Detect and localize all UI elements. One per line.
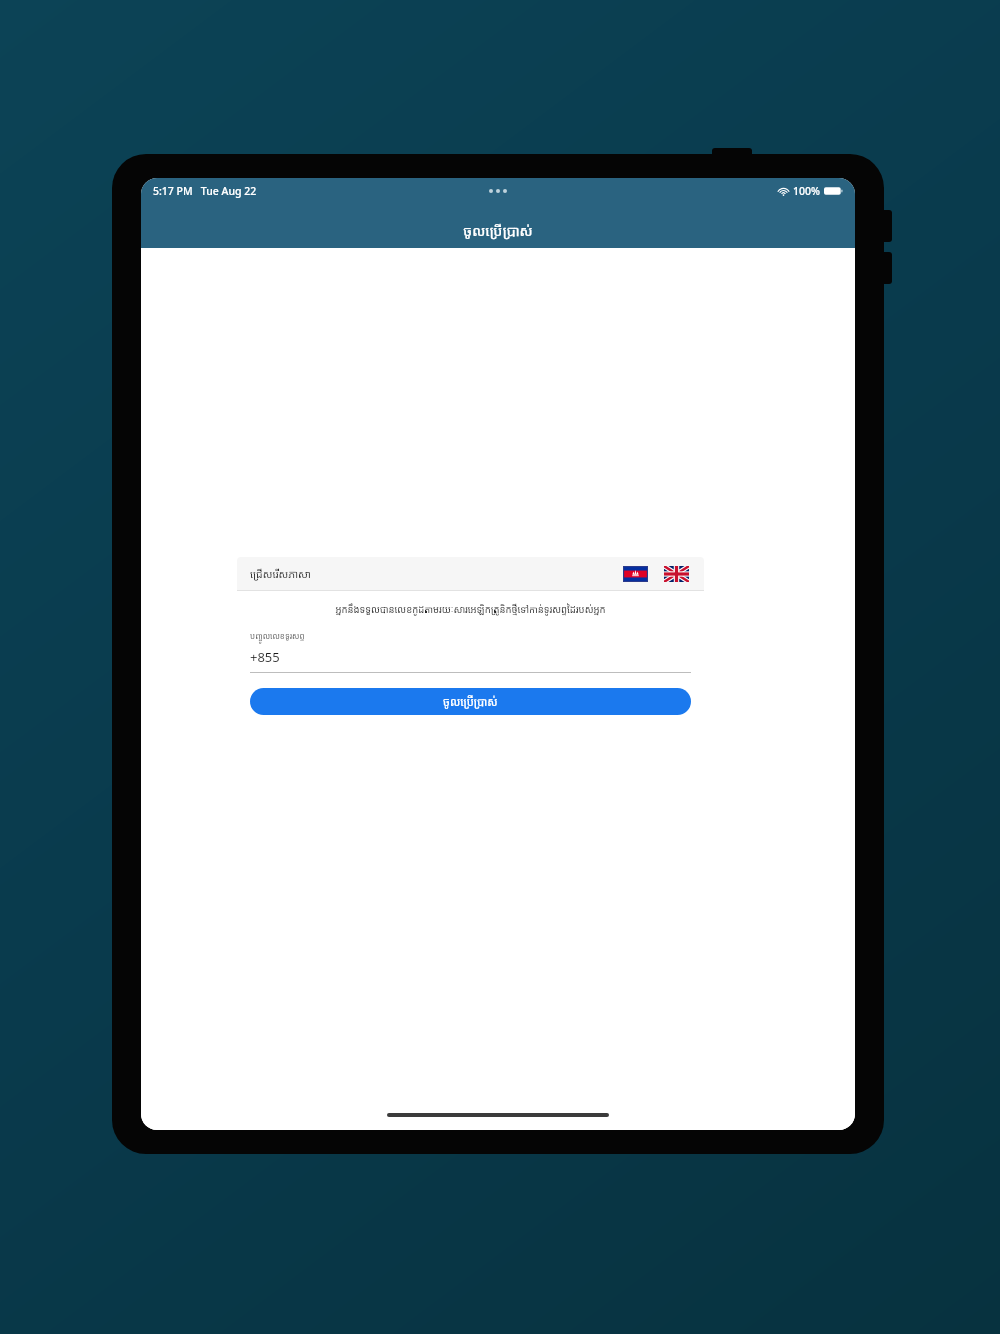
button[interactable]: English language xyxy=(662,564,691,584)
staticText: 100% xyxy=(793,184,820,198)
staticText: អ្នកនឹងទទួលបានលេខកូដតាមរយៈសារអេឡិកត្រូនិ… xyxy=(250,603,691,616)
staticText: +855 xyxy=(250,648,280,666)
staticText: ចូលប្រើប្រាស់ xyxy=(443,694,498,709)
button[interactable]: ចូលប្រើប្រាស់ xyxy=(250,688,691,715)
staticText: បញ្ចូលលេខទូរសព្ទ xyxy=(250,630,305,641)
button[interactable]: Khmer language xyxy=(621,564,650,584)
staticText: ចូលប្រើប្រាស់ xyxy=(463,221,533,240)
staticText: ជ្រើសរើសភាសា xyxy=(250,567,311,581)
button[interactable]: +855 xyxy=(250,648,691,673)
staticText: 5:17 PM Tue Aug 22 xyxy=(153,184,257,198)
